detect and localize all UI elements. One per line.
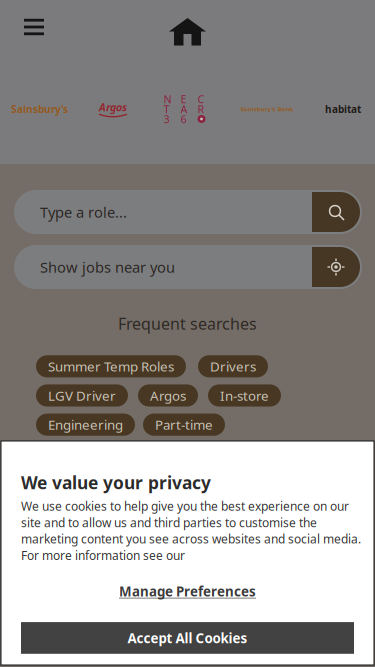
- button[interactable]: LGV Driver: [36, 384, 128, 407]
- staticText: Summer Temp Roles: [48, 357, 174, 375]
- staticText: Sainsbury's: [11, 102, 68, 116]
- button[interactable]: Home: [161, 0, 214, 54]
- staticText: LGV Driver: [48, 386, 116, 405]
- staticText: T: [163, 102, 169, 116]
- button[interactable]: Summer Temp Roles: [36, 355, 186, 377]
- staticText: Argos: [99, 100, 127, 114]
- staticText: Manage Preferences: [119, 582, 256, 600]
- button[interactable]: Show jobs near you: [0, 245, 375, 289]
- staticText: Drivers: [210, 357, 256, 375]
- staticText: 3: [163, 112, 169, 126]
- button[interactable]: Accept All Cookies: [21, 622, 354, 654]
- staticText: A: [180, 102, 187, 116]
- staticText: We value your privacy: [21, 471, 211, 494]
- button[interactable]: Engineering: [36, 414, 135, 436]
- staticText: Sainsbury's Bank: [240, 105, 293, 113]
- staticText: Show jobs near you: [40, 257, 175, 277]
- staticText: N: [163, 92, 171, 106]
- staticText: Argos: [150, 386, 186, 405]
- staticText: Type a role...: [40, 202, 127, 222]
- button[interactable]: Menu: [0, 5, 58, 49]
- button[interactable]: Part-time: [143, 414, 225, 436]
- button[interactable]: Type a role...: [0, 190, 375, 234]
- staticText: Part-time: [155, 416, 213, 434]
- staticText: E: [180, 92, 186, 106]
- staticText: In-store: [220, 386, 269, 405]
- staticText: Engineering: [48, 416, 123, 434]
- staticText: Accept All Cookies: [127, 629, 247, 647]
- button[interactable]: In-store: [208, 384, 281, 407]
- button[interactable]: Drivers: [198, 355, 268, 377]
- staticText: C: [197, 92, 204, 106]
- button[interactable]: Argos: [138, 384, 198, 407]
- staticText: R: [197, 102, 204, 116]
- staticText: habitat: [325, 102, 361, 116]
- staticText: We use cookies to help give you the best…: [21, 498, 361, 563]
- staticText: Frequent searches: [118, 313, 257, 334]
- staticText: 6: [180, 112, 186, 126]
- button[interactable]: Manage Preferences: [21, 563, 354, 622]
